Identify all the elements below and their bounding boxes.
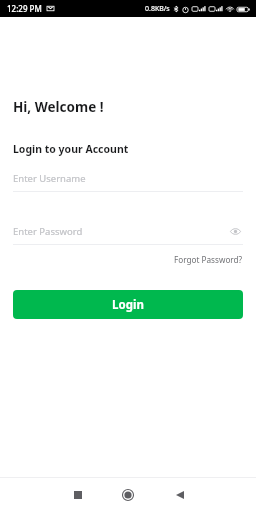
staticText: 12:29 PM	[7, 3, 42, 14]
button[interactable]: Show password	[227, 223, 243, 239]
button[interactable]: Login	[13, 290, 243, 319]
button[interactable]: Forgot Password?	[174, 254, 243, 265]
staticText: Enter Password	[13, 225, 227, 238]
button[interactable]: Enter Username	[13, 170, 243, 192]
staticText: Hi, Welcome !	[13, 98, 104, 116]
staticText: 0.8KB/s	[145, 4, 170, 14]
button[interactable]: Enter Password	[13, 223, 243, 239]
button[interactable]: Home	[110, 478, 146, 512]
staticText: Forgot Password?	[174, 254, 243, 265]
staticText: Login to your Account	[13, 142, 129, 156]
staticText: Login	[112, 297, 144, 313]
staticText: Enter Username	[13, 172, 86, 185]
button[interactable]: Recent apps	[60, 478, 96, 512]
button[interactable]: Back	[162, 478, 198, 512]
